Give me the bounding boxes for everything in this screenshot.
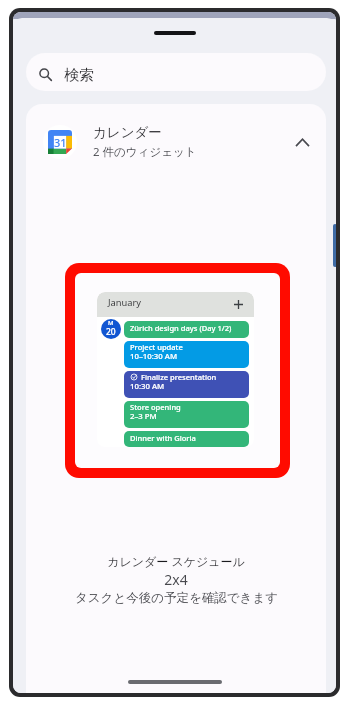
staticText: Dinner with Gloria [130,433,196,443]
button[interactable]: Store opening [124,401,249,428]
button[interactable]: 検索 [26,53,326,91]
staticText: タスクと今後の予定を確認できます [75,590,278,606]
button[interactable]: Finalize presentation [124,371,249,398]
staticText: 31 [54,135,67,150]
other: Add event [234,300,243,309]
staticText: カレンダー [93,124,162,141]
staticText: カレンダー スケジュール [107,553,245,569]
button[interactable]: Zürich design days (Day 1/2) [124,321,249,338]
staticText: M [108,319,114,327]
button[interactable]: Project update [124,341,249,368]
other: Collapse [291,131,313,153]
button[interactable]: January [97,292,254,317]
staticText: 2–3 PM [130,411,157,422]
staticText: January [108,296,142,309]
staticText: 20 [106,326,116,338]
staticText: Store opening [130,402,181,412]
staticText: Finalize presentation [141,372,217,382]
staticText: Project update [130,342,183,352]
staticText: 検索 [64,66,94,85]
staticText: 10:30 AM [130,381,165,392]
button[interactable]: Dinner with Gloria [124,431,249,447]
staticText: Zürich design days (Day 1/2) [130,323,232,333]
staticText: 2 件のウィジェット [93,144,197,160]
staticText: 10–10:30 AM [130,351,178,362]
staticText: 2x4 [164,570,188,589]
button[interactable]: 31 [26,110,326,174]
